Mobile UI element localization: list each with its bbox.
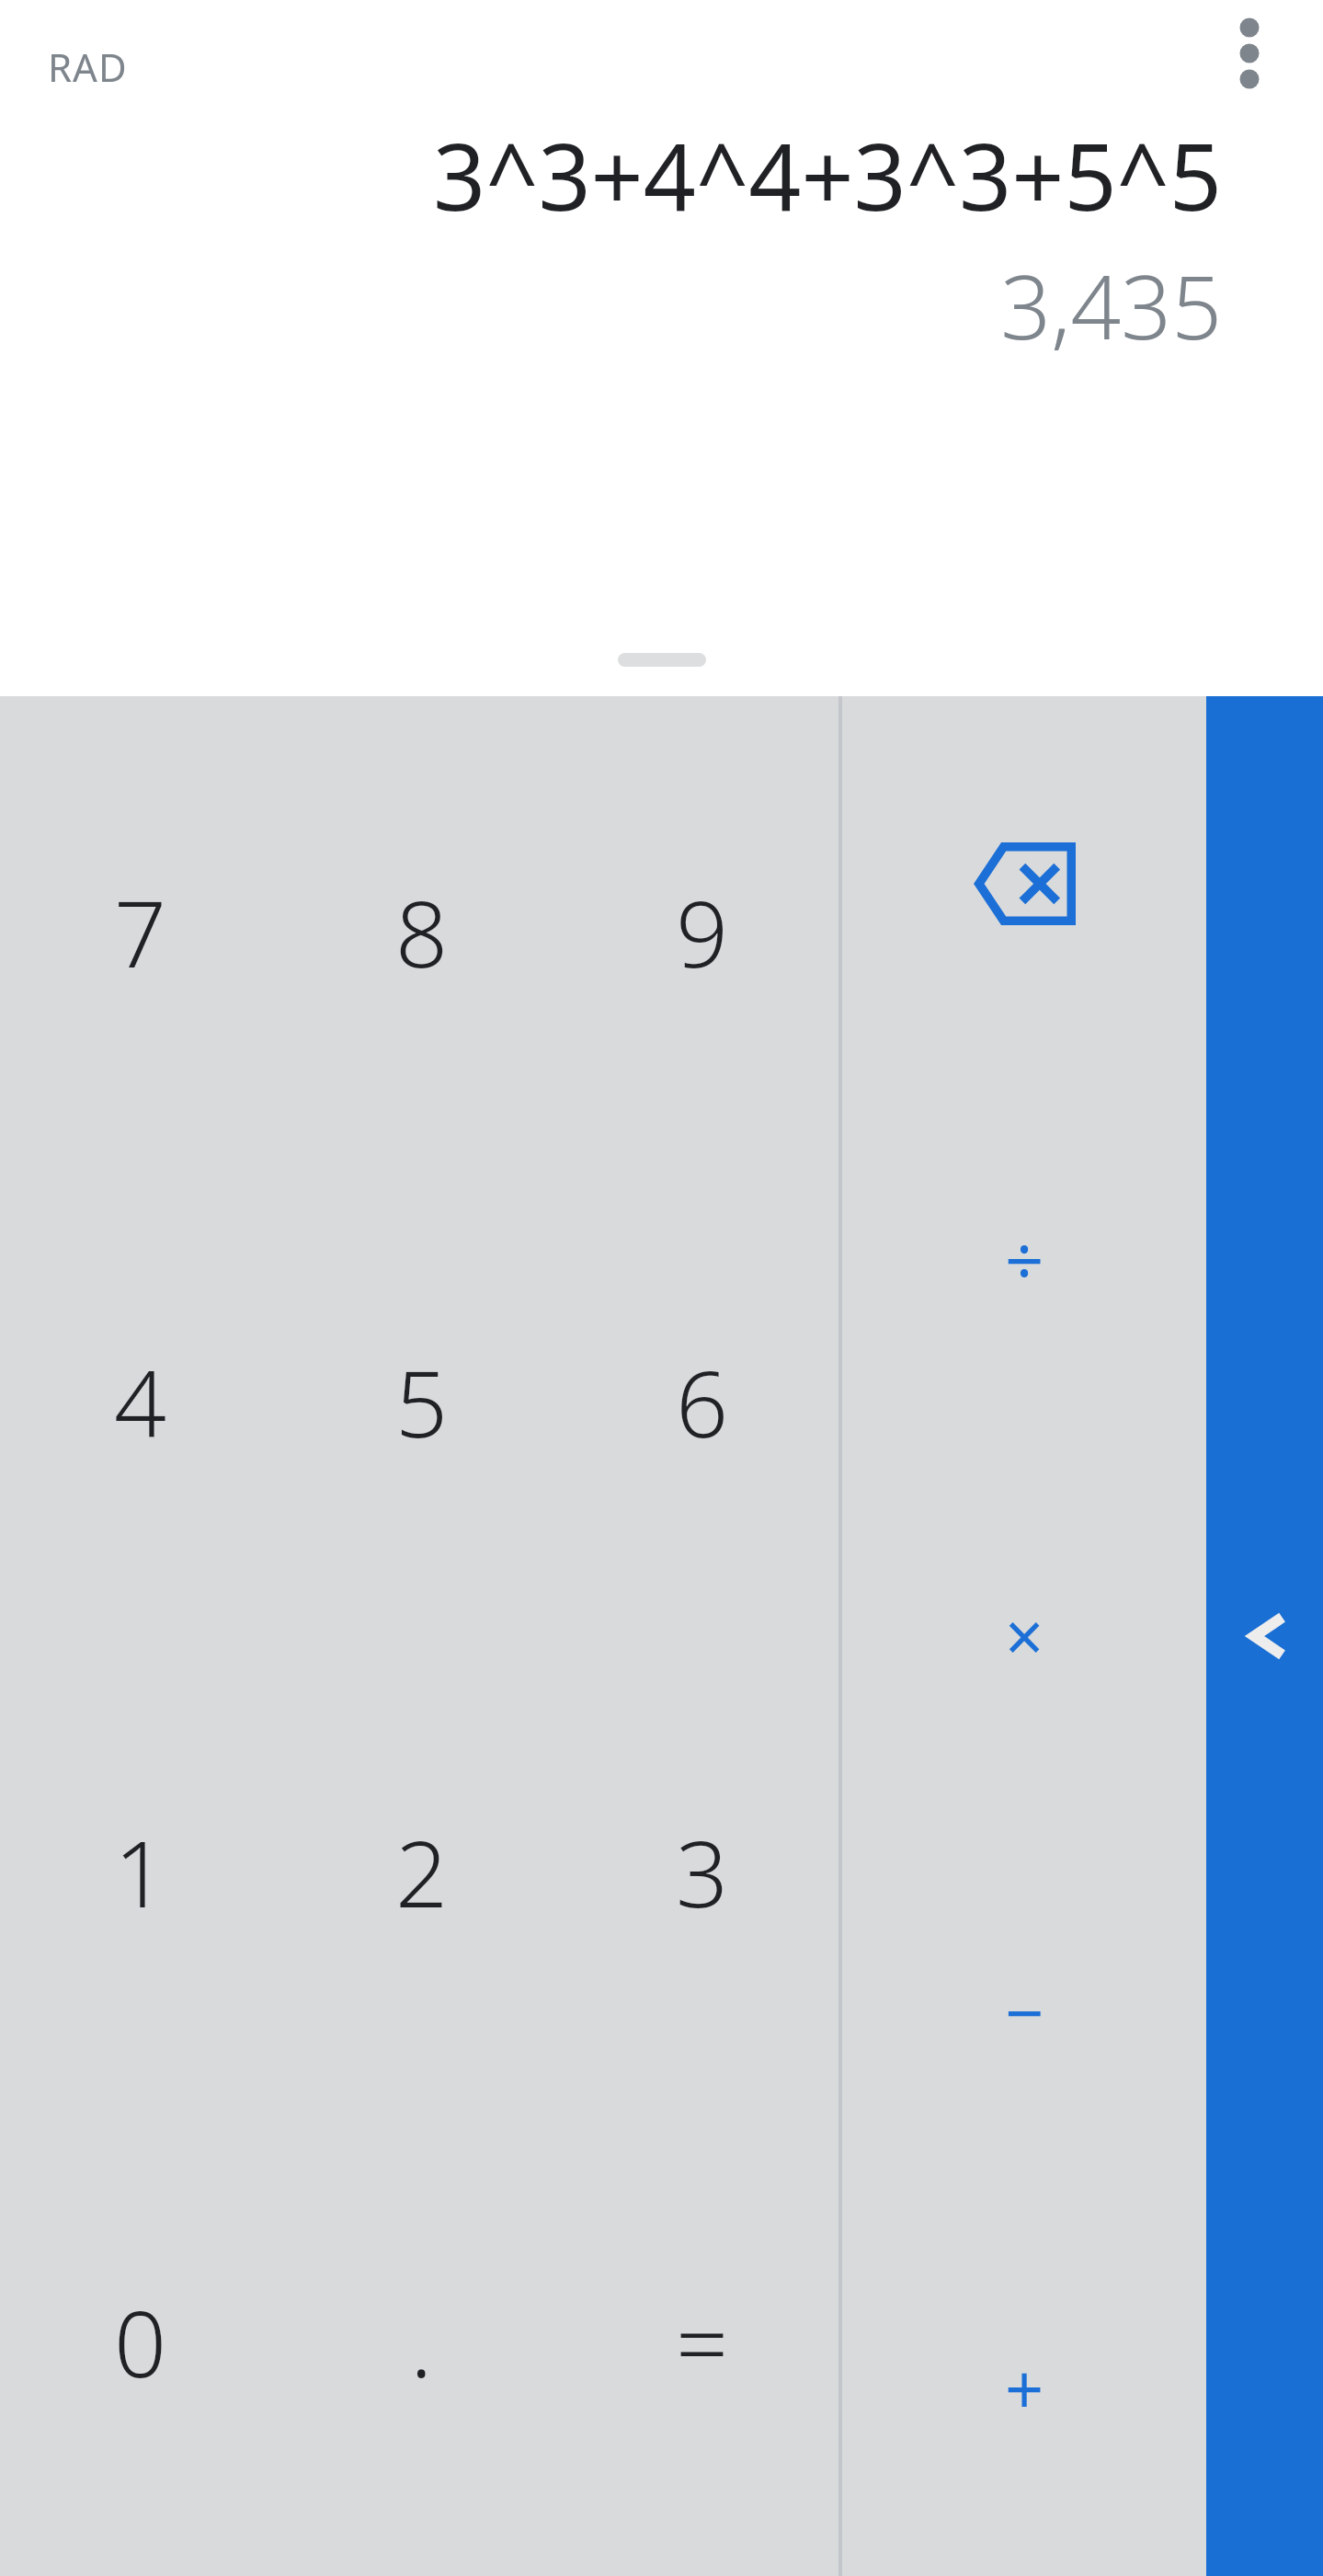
button[interactable]: 7 [0, 696, 281, 1166]
staticText: 8 [395, 869, 449, 994]
button[interactable]: = [562, 2106, 842, 2576]
staticText: 2 [395, 1809, 449, 1934]
staticText: 6 [676, 1339, 729, 1464]
staticText: 9 [676, 869, 729, 994]
staticText: . [410, 2279, 433, 2404]
staticText: + [1005, 2341, 1044, 2434]
button[interactable]: Add [842, 2200, 1206, 2576]
button[interactable]: 0 [0, 2106, 281, 2576]
button[interactable]: Divide [842, 1071, 1206, 1448]
staticText: 3 [676, 1809, 729, 1934]
button[interactable]: 8 [281, 696, 562, 1166]
button[interactable]: Backspace [842, 696, 1206, 1071]
button[interactable]: 5 [281, 1166, 562, 1636]
staticText: 4 [114, 1339, 167, 1464]
button[interactable]: 4 [0, 1166, 281, 1636]
button[interactable]: Subtract [842, 1824, 1206, 2200]
staticText: 1 [114, 1809, 167, 1934]
button[interactable]: More options [1198, 2, 1301, 105]
staticText: 3,435 [0, 245, 1222, 365]
button[interactable]: 3 [562, 1636, 842, 2106]
staticText: 3^3+4^4+3^3+5^5 [0, 112, 1222, 237]
staticText: RAD [48, 40, 128, 93]
staticText: ÷ [1005, 1213, 1044, 1306]
staticText: = [676, 2279, 729, 2404]
button[interactable] [618, 653, 706, 667]
button[interactable]: 9 [562, 696, 842, 1166]
staticText: 0 [114, 2279, 167, 2404]
button[interactable]: 2 [281, 1636, 562, 2106]
button[interactable]: RAD [24, 26, 152, 108]
button[interactable]: Multiply [842, 1448, 1206, 1824]
staticText: × [1005, 1589, 1044, 1682]
button[interactable]: 6 [562, 1166, 842, 1636]
button[interactable]: Open advanced pad [1206, 696, 1323, 2576]
staticText: − [1005, 1965, 1044, 2058]
staticText: 7 [114, 869, 167, 994]
button[interactable]: 1 [0, 1636, 281, 2106]
button[interactable]: . [281, 2106, 562, 2576]
staticText: 5 [395, 1339, 449, 1464]
